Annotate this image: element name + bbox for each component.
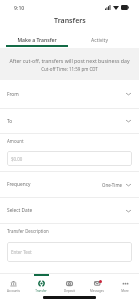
button[interactable]: Enter Text <box>7 242 132 262</box>
staticText: Cut-off Time: 11:59 pm CDT <box>41 66 98 72</box>
staticText: Frequency <box>7 181 102 188</box>
button[interactable]: Select Date <box>0 198 139 223</box>
staticText: Make a Transfer <box>17 37 57 44</box>
staticText: More <box>121 289 129 293</box>
other: More <box>122 280 129 287</box>
button[interactable]: Frequency <box>0 172 139 197</box>
button[interactable]: To <box>0 109 139 133</box>
button[interactable]: From <box>0 80 139 108</box>
staticText: Transfer <box>35 289 47 293</box>
staticText: $0.00 <box>11 156 23 162</box>
other: Accounts <box>10 280 17 287</box>
button[interactable]: Messages <box>83 274 111 295</box>
button[interactable]: Deposit <box>55 274 83 295</box>
button[interactable]: Transfer <box>27 274 55 295</box>
button[interactable]: $0.00 <box>7 151 132 166</box>
staticText: One-Time <box>102 182 123 188</box>
staticText: Accounts <box>7 289 20 293</box>
staticText: Select Date <box>7 207 126 214</box>
other: Expand <box>126 183 131 187</box>
staticText: To <box>7 118 126 125</box>
other: Transfer <box>38 280 45 287</box>
other: Expand <box>126 209 131 213</box>
staticText: Messages <box>90 289 104 293</box>
other: Expand <box>126 119 131 123</box>
staticText: Activity <box>91 37 108 44</box>
other: Deposit <box>66 280 73 287</box>
staticText: After cut-off, transfers will post next … <box>9 57 130 64</box>
button[interactable]: Accounts <box>0 274 27 295</box>
staticText: Transfer Description <box>7 228 49 234</box>
button[interactable]: Make a Transfer <box>6 27 68 48</box>
other: Messages <box>94 280 101 287</box>
staticText: Amount <box>7 138 24 144</box>
other: Expand <box>126 92 131 96</box>
button[interactable]: Activity <box>68 27 130 48</box>
staticText: Deposit <box>64 289 75 293</box>
staticText: 9:10 <box>14 4 25 11</box>
staticText: Transfers <box>54 16 86 26</box>
staticText: From <box>7 91 126 98</box>
button[interactable]: More <box>111 274 139 295</box>
staticText: Enter Text <box>11 249 32 255</box>
